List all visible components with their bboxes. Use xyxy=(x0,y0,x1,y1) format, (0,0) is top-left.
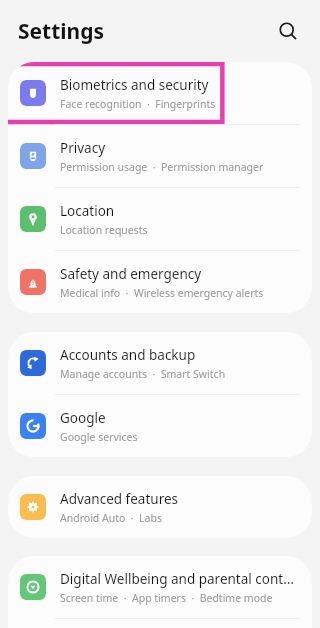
staticText: Google xyxy=(60,409,106,427)
staticText: Accounts and backup xyxy=(60,346,196,364)
button[interactable]: Advanced features xyxy=(8,476,312,538)
button[interactable]: Digital Wellbeing and parental controls xyxy=(8,556,312,618)
staticText: Biometrics and security xyxy=(60,76,209,94)
staticText: Advanced features xyxy=(60,490,179,508)
staticText: Permission usage · Permission manager xyxy=(60,160,264,174)
button[interactable]: Safety and emergency xyxy=(8,251,312,313)
button[interactable]: Biometrics and security xyxy=(8,62,312,124)
staticText: Google services xyxy=(60,430,138,444)
staticText: Privacy xyxy=(60,139,106,157)
staticText: Medical info · Wireless emergency alerts xyxy=(60,286,264,300)
staticText: Location requests xyxy=(60,223,148,237)
staticText: Location xyxy=(60,202,115,220)
staticText: Screen time · App timers · Bedtime mode xyxy=(60,591,273,605)
button[interactable]: Privacy xyxy=(8,125,312,187)
staticText: Android Auto · Labs xyxy=(60,511,162,525)
staticText: Face recognition · Fingerprints xyxy=(60,97,216,111)
button[interactable]: Search xyxy=(266,9,310,53)
staticText: Manage accounts · Smart Switch xyxy=(60,367,226,381)
button[interactable]: Location xyxy=(8,188,312,250)
staticText: Settings xyxy=(18,17,105,46)
button[interactable]: Accounts and backup xyxy=(8,332,312,394)
button[interactable]: Google xyxy=(8,395,312,457)
staticText: Safety and emergency xyxy=(60,265,202,283)
staticText: Digital Wellbeing and parental controls xyxy=(60,570,298,588)
